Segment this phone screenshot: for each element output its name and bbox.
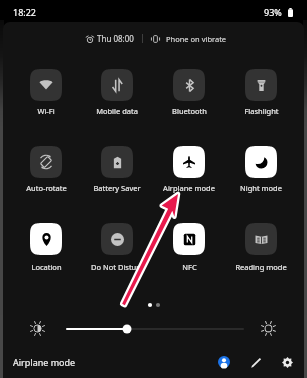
staticText: Reading mode [235, 262, 287, 272]
staticText: Location [31, 262, 62, 272]
staticText: Wi-Fi [37, 106, 55, 116]
button[interactable] [81, 69, 153, 101]
button[interactable] [225, 223, 297, 255]
button[interactable] [225, 69, 297, 101]
staticText: Flashlight [244, 106, 279, 116]
button[interactable] [153, 146, 225, 178]
button[interactable] [81, 223, 153, 255]
button[interactable] [10, 69, 82, 101]
staticText: Battery Saver [93, 183, 141, 193]
staticText: Do Not Disturb [91, 262, 144, 272]
staticText: Night mode [240, 183, 282, 193]
button[interactable]: Edit tiles [247, 353, 265, 371]
staticText: Auto-rotate [26, 183, 67, 193]
staticText: Bluetooth [172, 106, 207, 116]
button[interactable] [153, 69, 225, 101]
button[interactable]: User account [215, 353, 233, 371]
staticText: Airplane mode [13, 356, 76, 368]
staticText: Thu 08:00 [97, 33, 134, 44]
staticText: 18:22 [13, 6, 37, 18]
staticText: 93% [264, 6, 282, 18]
staticText: NFC [182, 262, 197, 272]
button[interactable] [10, 146, 82, 178]
staticText: Airplane mode [163, 183, 215, 193]
staticText: Mobile data [96, 106, 138, 116]
button[interactable]: Settings [278, 353, 296, 371]
button[interactable] [225, 146, 297, 178]
button[interactable] [81, 146, 153, 178]
staticText: Phone on vibrate [166, 34, 227, 44]
button[interactable] [153, 223, 225, 255]
button[interactable] [10, 223, 82, 255]
